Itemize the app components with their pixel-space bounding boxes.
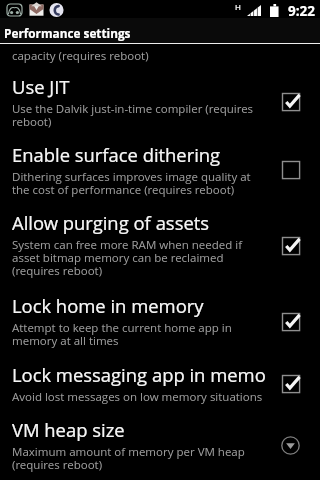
staticText: Use JIT (12, 74, 267, 99)
other: Expand (281, 436, 300, 455)
other: Signal strength (247, 5, 261, 16)
button[interactable]: Lock home in memory (0, 287, 320, 356)
other: Checked (282, 375, 300, 393)
staticText: Enable surface dithering (12, 142, 267, 167)
staticText: Lock home in memory (12, 293, 267, 318)
staticText: Maximum amount of memory per VM heap (re… (12, 444, 267, 473)
other: New email (29, 2, 44, 16)
staticText: capacity (requires reboot) (12, 48, 149, 64)
button[interactable]: Lock messaging app in memory (0, 356, 320, 411)
button[interactable]: VM heap size (0, 411, 320, 479)
other: Checked (282, 93, 300, 111)
staticText: 9:22 (288, 2, 315, 20)
staticText: Use the Dalvik just-in-time compiler (re… (12, 101, 267, 130)
staticText: Avoid lost messages on low memory situat… (12, 389, 267, 405)
other: Checked (282, 237, 300, 255)
staticText: Attempt to keep the current home app in … (12, 320, 267, 349)
other: Missed call (49, 3, 64, 17)
button[interactable]: Enable surface dithering (0, 136, 320, 204)
button[interactable]: Allow purging of assets (0, 204, 320, 287)
staticText: System can free more RAM when needed if … (12, 237, 267, 279)
other: USB debugging connected (6, 3, 23, 17)
button[interactable]: Use JIT (0, 68, 320, 136)
staticText: VM heap size (12, 417, 267, 442)
other: Unchecked (282, 161, 300, 179)
other: Checked (282, 313, 300, 331)
staticText: H (235, 1, 241, 12)
staticText: Dithering surfaces improves image qualit… (12, 169, 267, 198)
staticText: Lock messaging app in memory (12, 362, 267, 387)
other: Battery full (270, 4, 279, 17)
staticText: Allow purging of assets (12, 210, 267, 235)
staticText: Performance settings (4, 25, 131, 41)
